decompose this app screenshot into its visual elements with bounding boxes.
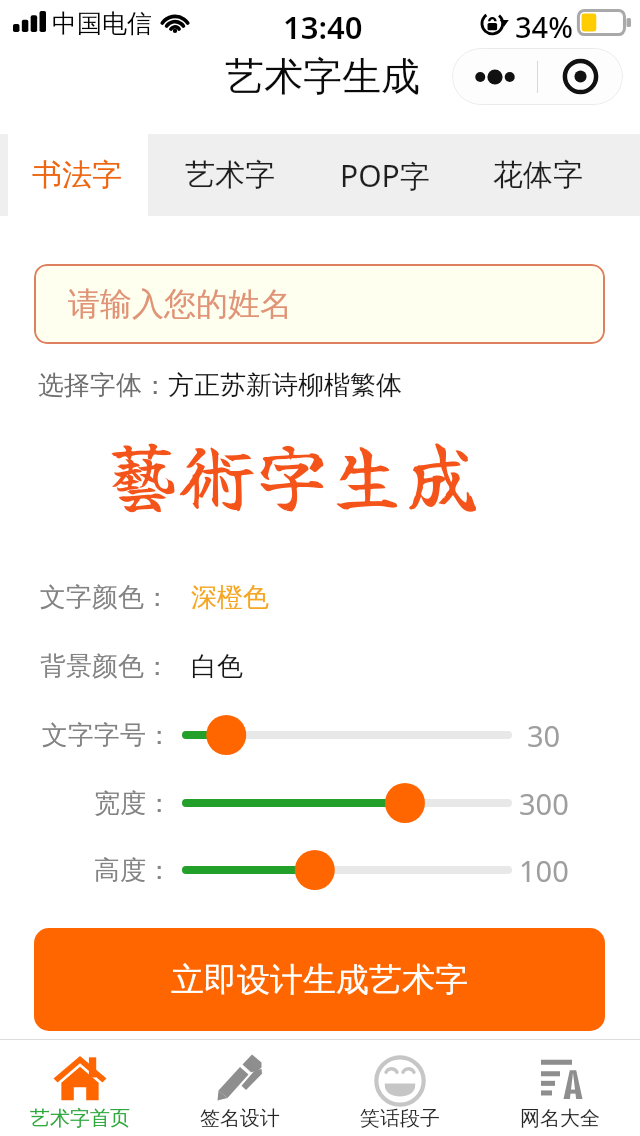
staticText: 网名大全 [520, 1106, 600, 1131]
button[interactable]: 笑话段子 [320, 1040, 480, 1136]
staticText: 文字颜色： [40, 581, 170, 614]
staticText: 签名设计 [200, 1106, 280, 1131]
button[interactable]: 艺术字首页 [0, 1040, 160, 1136]
staticText: POP字 [340, 155, 430, 196]
staticText: 选择字体： [38, 369, 168, 402]
button[interactable]: 立即设计生成艺术字 [34, 928, 605, 1031]
staticText: 中国电信 [52, 8, 152, 39]
staticText: 宽度： [94, 787, 172, 820]
staticText: 文字字号： [42, 719, 172, 752]
staticText: 书法字 [32, 156, 122, 194]
button[interactable]: 请输入您的姓名 [34, 264, 605, 344]
staticText: 艺术字首页 [30, 1106, 130, 1131]
staticText: 30 [527, 716, 561, 755]
staticText: 花体字 [493, 156, 583, 194]
button[interactable]: 签名设计 [160, 1040, 320, 1136]
staticText: 高度： [94, 854, 172, 887]
staticText: 艺术字生成 [225, 52, 420, 101]
staticText: 300 [519, 784, 569, 823]
staticText: 藝術字生成 [104, 419, 480, 528]
button[interactable]: More options [452, 48, 537, 105]
button[interactable] [170, 779, 524, 827]
staticText: 深橙色 [191, 581, 269, 614]
button[interactable]: Close mini program [538, 48, 623, 105]
staticText: 艺术字 [185, 156, 275, 194]
staticText: 白色 [191, 650, 243, 683]
staticText: 100 [519, 851, 569, 890]
staticText: 笑话段子 [360, 1106, 440, 1131]
staticText: 请输入您的姓名 [68, 284, 292, 324]
staticText: 13:40 [283, 6, 363, 48]
button[interactable] [170, 711, 524, 759]
button[interactable]: POP字 [310, 134, 462, 216]
button[interactable] [170, 846, 524, 894]
staticText: 立即设计生成艺术字 [171, 959, 468, 1001]
button[interactable]: 书法字 [0, 134, 148, 216]
staticText: 34% [515, 7, 573, 46]
staticText: 方正苏新诗柳楷繁体 [168, 369, 402, 402]
staticText: 背景颜色： [40, 650, 170, 683]
button[interactable]: 网名大全 [480, 1040, 640, 1136]
button[interactable]: 艺术字 [148, 134, 310, 216]
button[interactable]: 花体字 [462, 134, 614, 216]
